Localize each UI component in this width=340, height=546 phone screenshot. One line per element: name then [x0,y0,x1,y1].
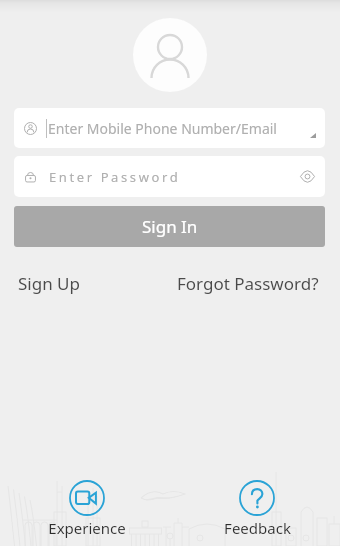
button[interactable]: Experience [32,475,142,538]
button[interactable]: Sign In [14,206,325,247]
staticText: Forgot Password? [177,272,319,295]
staticText: Experience [48,518,126,538]
staticText: Sign Up [18,272,80,295]
button[interactable]: Enter Mobile Phone Number/Email [14,108,325,148]
other: Show password [300,171,315,182]
button[interactable]: Enter Password [14,156,325,197]
button[interactable]: Forgot Password? [171,268,325,299]
staticText: Feedback [224,518,291,538]
staticText: Enter Mobile Phone Number/Email [48,119,277,138]
staticText: Sign In [142,215,198,238]
button[interactable]: Sign Up [12,268,86,299]
button[interactable]: Profile avatar [133,18,207,92]
staticText: Enter Password [49,168,181,186]
button[interactable]: Feedback [202,475,312,538]
